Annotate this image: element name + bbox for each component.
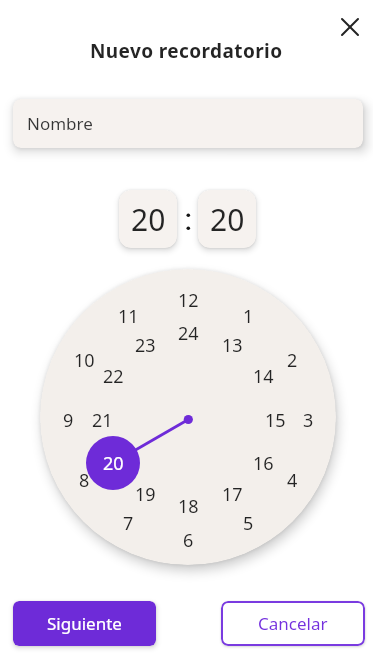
staticText: Siguiente <box>47 612 122 635</box>
staticText: 20 <box>210 199 245 240</box>
staticText: 10 <box>74 348 95 372</box>
staticText: 15 <box>265 408 286 432</box>
button[interactable]: 20 <box>119 190 177 248</box>
staticText: Nombre <box>27 112 93 135</box>
staticText: 14 <box>253 364 274 388</box>
button[interactable]: Cancelar <box>221 601 365 646</box>
staticText: 23 <box>135 333 156 357</box>
staticText: 12 <box>178 288 199 312</box>
button[interactable]: Nombre <box>13 99 363 148</box>
staticText: 2 <box>287 348 298 372</box>
staticText: 16 <box>253 451 274 475</box>
staticText: 18 <box>178 494 199 518</box>
staticText: Cancelar <box>258 612 328 635</box>
button[interactable] <box>337 14 363 40</box>
staticText: 1 <box>243 304 254 328</box>
staticText: 8 <box>79 468 90 492</box>
staticText: 13 <box>222 333 243 357</box>
button[interactable]: 20 <box>198 190 256 248</box>
staticText: Nuevo recordatorio <box>90 38 283 64</box>
staticText: 5 <box>243 511 254 535</box>
staticText: 24 <box>178 321 199 345</box>
staticText: 11 <box>118 304 139 328</box>
button[interactable]: Siguiente <box>13 601 156 646</box>
staticText: 6 <box>183 528 194 552</box>
staticText: 9 <box>63 408 74 432</box>
staticText: 20 <box>103 451 124 476</box>
staticText: 4 <box>287 468 298 492</box>
staticText: 3 <box>303 408 314 432</box>
staticText: 7 <box>123 511 134 535</box>
staticText: 19 <box>135 482 156 506</box>
staticText: 17 <box>222 482 243 506</box>
staticText: 20 <box>131 199 166 240</box>
staticText: 22 <box>103 364 124 388</box>
button[interactable]: 20 <box>86 436 140 490</box>
staticText: 21 <box>92 408 113 432</box>
